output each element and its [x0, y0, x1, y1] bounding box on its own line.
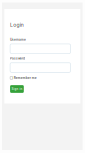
button[interactable]: Remember me [10, 76, 37, 80]
button[interactable]: Sign in [10, 85, 24, 93]
staticText: Login [10, 22, 24, 28]
button[interactable]: Username [10, 44, 70, 53]
staticText: Sign in [11, 87, 22, 91]
staticText: Username [10, 38, 26, 41]
staticText: Password [10, 56, 25, 60]
staticText: Remember me [14, 76, 37, 80]
